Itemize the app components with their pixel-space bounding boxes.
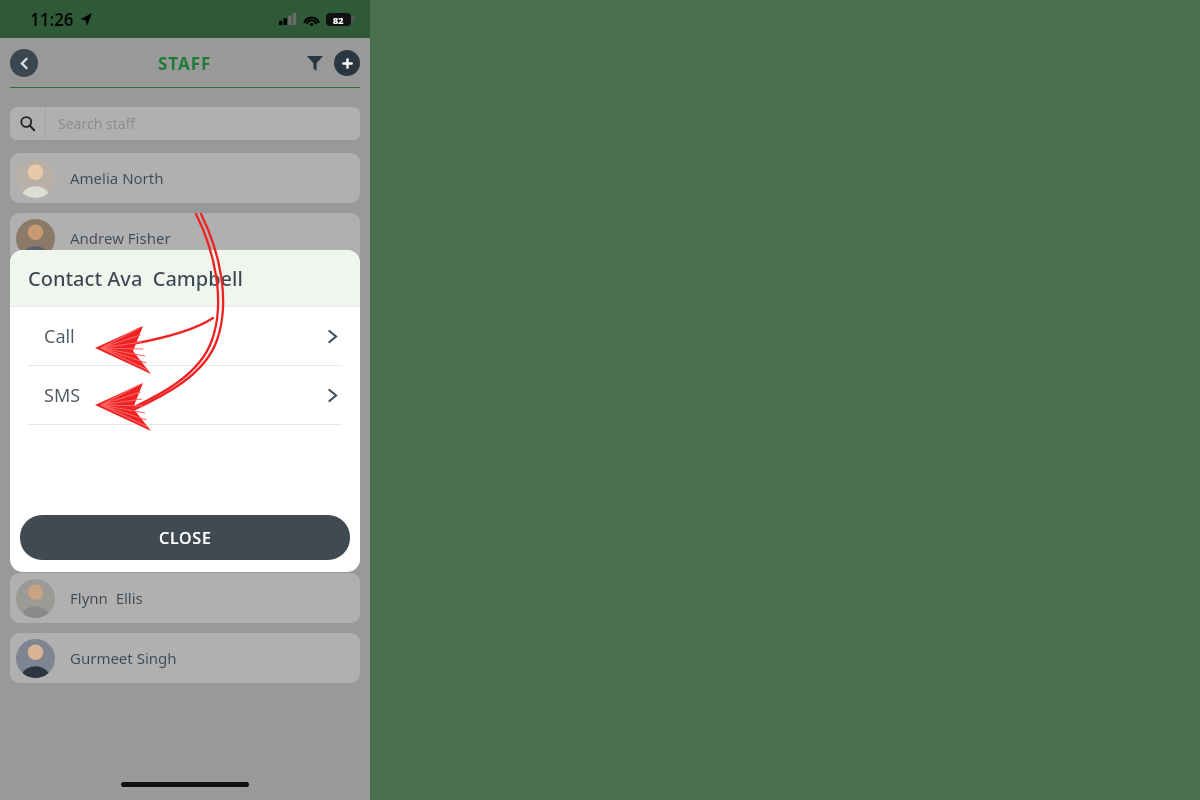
button[interactable]: Ava Campbell xyxy=(10,273,360,323)
staticText: 82 xyxy=(333,14,344,26)
button[interactable]: CLOSE xyxy=(20,515,350,560)
staticText: Ava Campbell xyxy=(70,288,170,308)
button[interactable]: Gurmeet Singh xyxy=(10,633,360,683)
button[interactable]: Andrew Fisher xyxy=(10,213,360,263)
staticText: Gurmeet Singh xyxy=(70,648,177,668)
staticText: STAFF xyxy=(158,52,212,75)
staticText: 11:26 xyxy=(30,8,74,31)
button[interactable]: Search staff xyxy=(10,107,360,140)
button[interactable]: Call xyxy=(10,307,360,365)
staticText: CLOSE xyxy=(159,527,212,549)
button[interactable]: EH xyxy=(10,513,360,563)
button[interactable]: Dana Woods xyxy=(10,393,360,443)
button[interactable]: Carlos Diaz xyxy=(10,333,360,383)
staticText: Andrew Fisher xyxy=(70,228,171,248)
staticText: Contact Ava Campbell xyxy=(28,265,243,292)
staticText: Carlos Diaz xyxy=(70,348,149,368)
staticText: Elizabeth Hendrix xyxy=(70,528,194,548)
staticText: Call xyxy=(44,324,75,349)
staticText: Amelia North xyxy=(70,168,164,188)
staticText: Flynn Ellis xyxy=(70,588,143,608)
button[interactable]: Flynn Ellis xyxy=(10,573,360,623)
button[interactable]: Filter xyxy=(300,48,330,78)
button[interactable]: Add staff xyxy=(334,50,360,76)
staticText: Dana Woods xyxy=(70,408,160,428)
staticText: SMS xyxy=(44,383,81,408)
button[interactable]: Contact card xyxy=(326,527,348,549)
staticText: Search staff xyxy=(58,114,136,133)
button[interactable]: Back xyxy=(10,49,38,77)
button[interactable]: SMS xyxy=(10,366,360,424)
button[interactable]: Amelia North xyxy=(10,153,360,203)
